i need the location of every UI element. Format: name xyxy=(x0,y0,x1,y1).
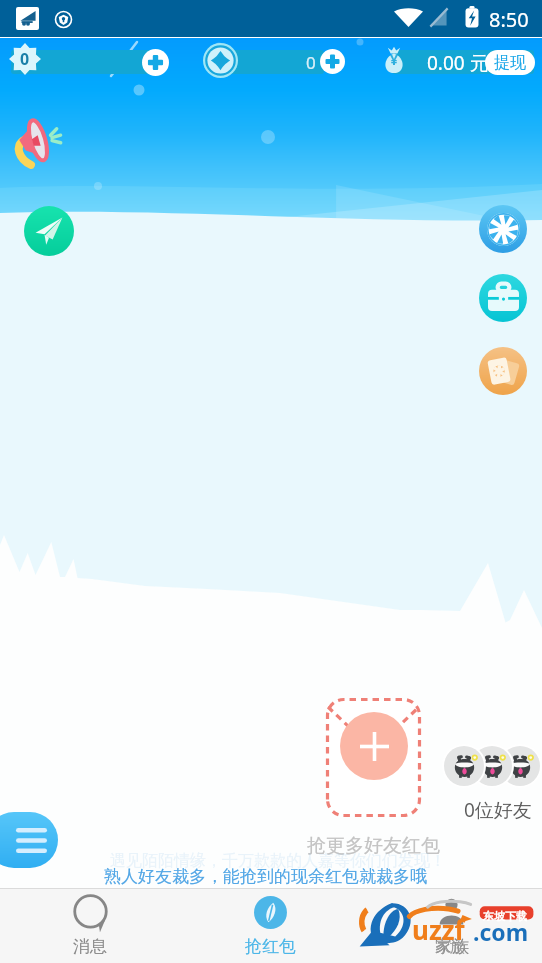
staticText: uzzf xyxy=(412,912,465,947)
staticText: 8:50 xyxy=(489,6,529,33)
button[interactable]: Menu xyxy=(0,812,58,868)
staticText: 消息 xyxy=(73,936,107,957)
staticText: 0 xyxy=(306,51,316,74)
staticText: 遇见陌陌情缘，千万款款的人嘉等你们们发现！ xyxy=(110,851,446,871)
button[interactable]: Cards xyxy=(479,347,527,395)
staticText: .com xyxy=(473,916,529,947)
button[interactable]: Create red packet xyxy=(340,712,408,780)
staticText: 提现 xyxy=(494,53,526,73)
staticText: 抢红包 xyxy=(245,936,296,957)
staticText: 0.00 元 xyxy=(427,50,489,76)
button[interactable]: 抢红包 xyxy=(180,889,361,963)
button[interactable]: Send message xyxy=(24,206,74,256)
button[interactable]: Tasks xyxy=(479,274,527,322)
staticText: 0位好友 xyxy=(464,797,532,823)
button[interactable]: Add energy xyxy=(142,49,169,76)
staticText: 家族 xyxy=(435,938,465,957)
staticText: ¥ xyxy=(390,50,399,69)
staticText: 0 xyxy=(20,48,30,70)
staticText: 抢更多好友红包 xyxy=(307,834,440,858)
button[interactable]: Diamonds xyxy=(203,43,238,78)
button[interactable]: 提现 xyxy=(485,50,535,75)
button[interactable]: Level xyxy=(9,43,41,75)
button[interactable]: Lottery xyxy=(479,205,527,253)
button[interactable]: 家族 xyxy=(361,889,542,963)
button[interactable]: 消息 xyxy=(0,889,180,963)
button[interactable]: Add diamonds xyxy=(320,49,345,74)
staticText: 家族 xyxy=(435,936,469,957)
button[interactable]: Announcements xyxy=(13,119,69,164)
staticText: 东坡下载 xyxy=(483,909,527,923)
staticText: 熟人好友裁多，能抢到的现余红包就裁多哦 xyxy=(104,866,427,887)
